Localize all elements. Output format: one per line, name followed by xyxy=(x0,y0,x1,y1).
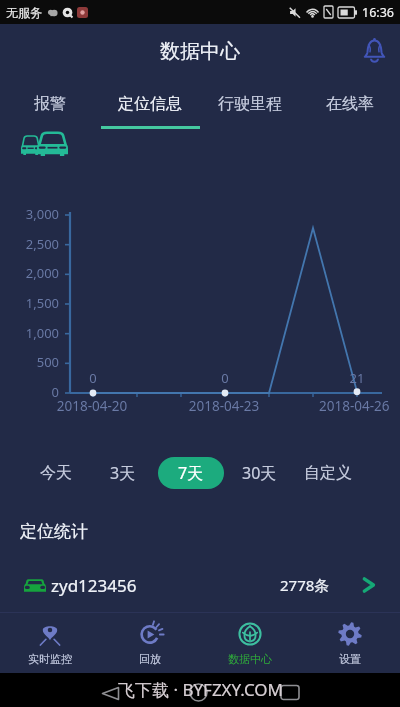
button[interactable]: 3天 xyxy=(90,458,156,488)
button[interactable]: 设置 xyxy=(300,613,400,673)
staticText: 21 xyxy=(347,369,367,387)
button[interactable]: 30天 xyxy=(226,458,292,488)
staticText: 定位信息 xyxy=(118,94,182,114)
staticText: 行驶里程 xyxy=(218,94,282,114)
staticText: 0 xyxy=(83,369,103,387)
button[interactable]: 行驶里程 xyxy=(200,72,300,130)
staticText: 在线率 xyxy=(326,94,374,114)
staticText: 设置 xyxy=(339,652,361,666)
staticText: 2778条 xyxy=(280,575,330,595)
staticText: 0 xyxy=(0,383,59,401)
staticText: 定位统计 xyxy=(20,521,88,542)
staticText: 2,500 xyxy=(0,235,59,253)
button[interactable]: 定位信息 xyxy=(100,72,200,130)
staticText: 实时监控 xyxy=(28,652,72,666)
button[interactable]: 7天 xyxy=(158,457,224,489)
staticText: 数据中心 xyxy=(160,39,240,64)
staticText: 7天 xyxy=(178,462,204,484)
staticText: 0 xyxy=(215,369,235,387)
button[interactable]: 数据中心 xyxy=(200,613,300,673)
button[interactable]: zyd123456 xyxy=(0,562,400,608)
staticText: 2018-04-20 xyxy=(53,397,131,415)
staticText: 无服务 xyxy=(6,5,42,20)
button[interactable]: Notifications xyxy=(357,33,391,67)
staticText: 2018-04-23 xyxy=(185,397,263,415)
staticText: 飞下载 · BYFZXY.COM xyxy=(118,678,283,701)
staticText: 报警 xyxy=(34,94,66,114)
staticText: 今天 xyxy=(40,463,72,483)
staticText: zyd123456 xyxy=(51,574,137,597)
staticText: 自定义 xyxy=(304,463,352,483)
staticText: 2018-04-26 xyxy=(319,397,390,415)
staticText: 回放 xyxy=(139,652,161,666)
staticText: 1,500 xyxy=(0,294,59,312)
staticText: 3天 xyxy=(110,462,136,484)
staticText: 1,000 xyxy=(0,324,59,342)
staticText: 500 xyxy=(0,353,59,371)
staticText: 30天 xyxy=(242,462,277,484)
button[interactable]: 实时监控 xyxy=(0,613,100,673)
staticText: 3,000 xyxy=(0,205,59,223)
staticText: 数据中心 xyxy=(228,652,272,666)
button[interactable]: 今天 xyxy=(23,458,89,488)
button[interactable]: 报警 xyxy=(0,72,100,130)
button[interactable]: 回放 xyxy=(100,613,200,673)
button[interactable]: 自定义 xyxy=(295,458,361,488)
staticText: 16:36 xyxy=(362,4,394,21)
button[interactable]: 在线率 xyxy=(300,72,400,130)
staticText: 2,000 xyxy=(0,264,59,282)
